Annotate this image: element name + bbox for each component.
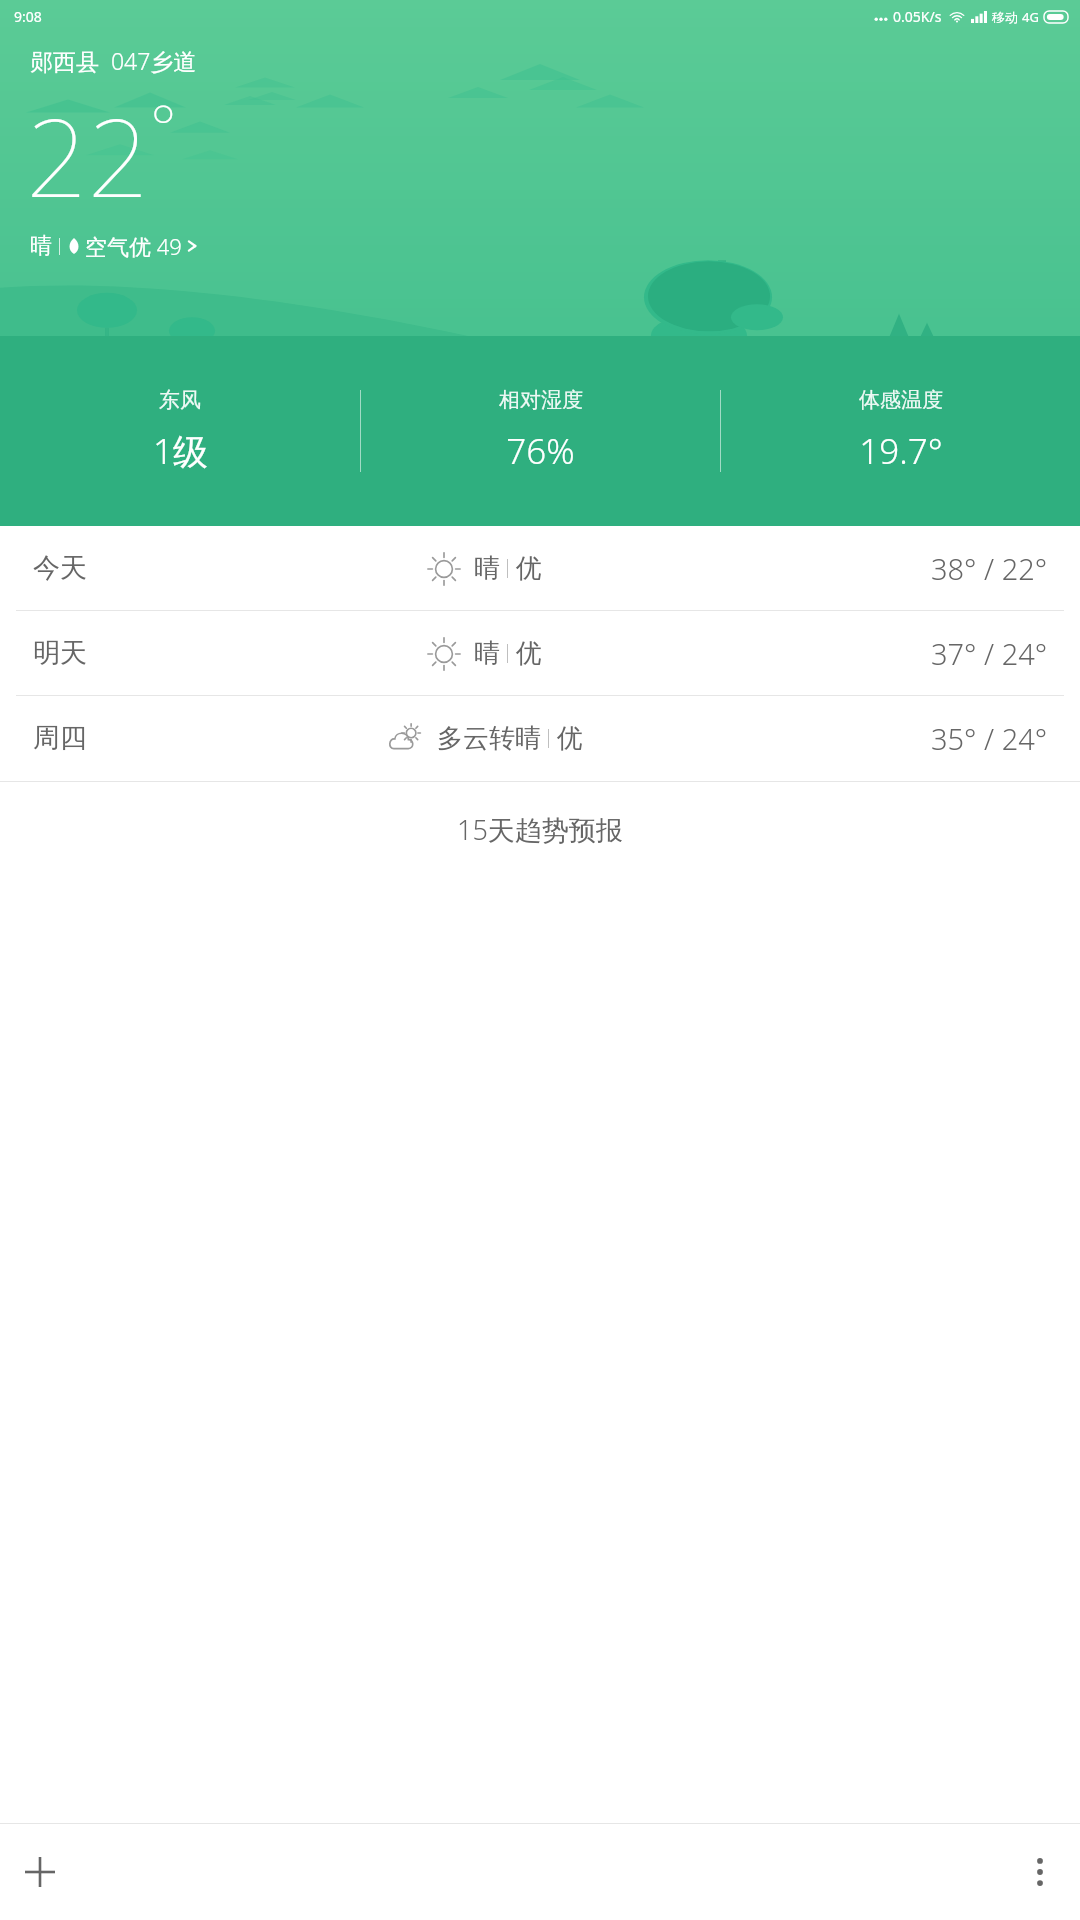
staticText: 体感温度	[859, 387, 943, 413]
staticText: 郧西县 047乡道	[30, 45, 197, 76]
staticText: 9:08	[14, 7, 42, 26]
button[interactable]: 晴	[30, 231, 199, 261]
button[interactable]: 周四	[0, 696, 1080, 780]
button[interactable]: More options	[1000, 1832, 1080, 1912]
staticText: 4G	[1022, 8, 1039, 26]
staticText: 1级	[153, 427, 208, 475]
staticText: 空气优 49	[85, 231, 182, 261]
button[interactable]: 明天	[0, 611, 1080, 695]
button[interactable]: 郧西县 047乡道	[30, 45, 197, 76]
staticText: 多云转晴	[437, 722, 541, 755]
button[interactable]: 相对湿度	[361, 387, 720, 475]
staticText: 35° / 24°	[931, 719, 1048, 758]
staticText: 相对湿度	[499, 387, 583, 413]
button[interactable]: 体感温度	[721, 387, 1080, 475]
staticText: 38° / 22°	[931, 549, 1048, 588]
staticText: °	[150, 84, 177, 168]
staticText: 优	[516, 552, 542, 585]
staticText: 晴	[474, 552, 500, 585]
staticText: 37° / 24°	[931, 634, 1048, 673]
staticText: 优	[557, 722, 583, 755]
staticText: 周四	[33, 721, 87, 755]
staticText: 76%	[506, 427, 575, 475]
staticText: 移动	[992, 9, 1018, 25]
staticText: 优	[516, 637, 542, 670]
staticText: 15天趋势预报	[457, 811, 623, 848]
staticText: 0.05K/s	[893, 7, 942, 26]
button[interactable]: Add city	[0, 1832, 80, 1912]
staticText: 22	[26, 82, 150, 229]
staticText: 东风	[159, 387, 201, 413]
staticText: 晴	[474, 637, 500, 670]
button[interactable]: 东风	[0, 387, 360, 475]
button[interactable]: 15天趋势预报	[0, 782, 1080, 877]
button[interactable]: 今天	[0, 526, 1080, 610]
staticText: 今天	[33, 551, 87, 585]
staticText: 明天	[33, 636, 87, 670]
staticText: 19.7°	[859, 427, 943, 475]
staticText: 晴	[30, 232, 52, 260]
